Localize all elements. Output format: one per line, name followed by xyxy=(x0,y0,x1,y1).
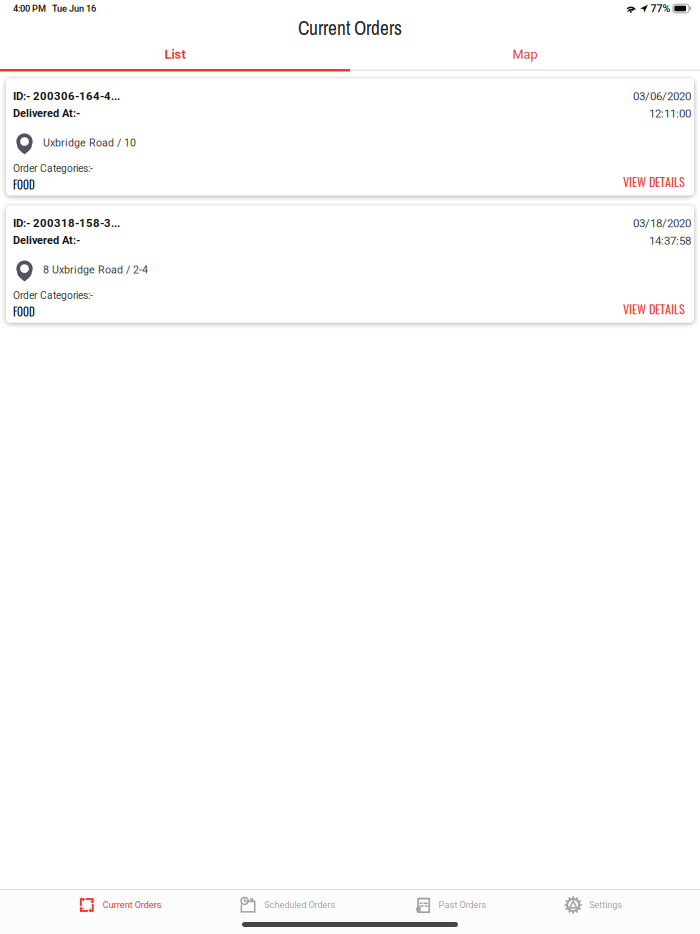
staticText: ID:- 200306-164-4... xyxy=(13,89,120,103)
staticText: 14:37:58 xyxy=(649,234,691,247)
button[interactable]: VIEW DETAILS xyxy=(621,170,687,193)
staticText: 03/06/2020 xyxy=(633,89,691,103)
staticText: Settings xyxy=(589,900,622,910)
button[interactable]: Scheduled Orders xyxy=(240,889,336,920)
staticText: Map xyxy=(512,47,537,62)
staticText: 12:11:00 xyxy=(649,107,691,120)
button[interactable]: VIEW DETAILS xyxy=(621,297,687,320)
staticText: VIEW DETAILS xyxy=(623,299,685,318)
staticText: Tue Jun 16 xyxy=(52,3,96,14)
staticText: 8 Uxbridge Road / 2-4 xyxy=(43,264,148,276)
staticText: ID:- 200318-158-3... xyxy=(13,217,120,230)
button[interactable]: Settings xyxy=(564,889,622,920)
staticText: Order Categories:- xyxy=(13,289,93,301)
staticText: Past Orders xyxy=(438,900,486,910)
staticText: Current Orders xyxy=(103,900,162,910)
staticText: VIEW DETAILS xyxy=(623,172,685,191)
staticText: List xyxy=(164,47,185,62)
staticText: 03/18/2020 xyxy=(633,217,691,230)
staticText: Uxbridge Road / 10 xyxy=(43,137,136,149)
staticText: Current Orders xyxy=(298,15,402,41)
staticText: Delivered At:- xyxy=(13,234,80,247)
staticText: Delivered At:- xyxy=(13,107,80,120)
staticText: FOOD xyxy=(13,176,35,193)
staticText: FOOD xyxy=(13,303,35,320)
button[interactable]: Past Orders xyxy=(413,889,486,920)
staticText: Scheduled Orders xyxy=(265,900,336,910)
button[interactable]: Map xyxy=(350,40,700,69)
staticText: Order Categories:- xyxy=(13,162,93,174)
staticText: 77% xyxy=(650,2,670,15)
staticText: 4:00 PM xyxy=(13,3,46,14)
button[interactable]: List xyxy=(0,40,350,69)
button[interactable]: Current Orders xyxy=(78,889,162,920)
